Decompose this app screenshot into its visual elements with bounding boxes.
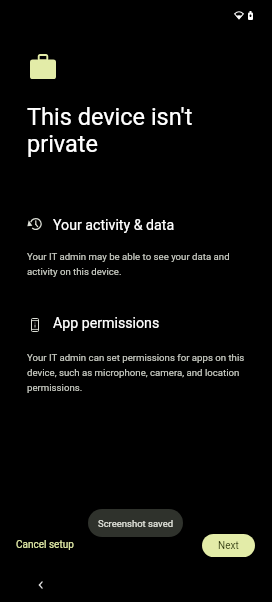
staticText: Next <box>218 540 239 552</box>
staticText: App permissions <box>53 315 160 332</box>
button[interactable]: Screenshot saved <box>88 509 183 537</box>
staticText: Screenshot saved <box>98 518 174 529</box>
button[interactable]: Back <box>29 573 53 597</box>
staticText: Your activity & data <box>53 217 175 234</box>
button[interactable]: Next <box>202 534 255 557</box>
staticText: Cancel setup <box>16 539 74 551</box>
staticText: This device isn't private <box>27 103 222 157</box>
staticText: Your IT admin may be able to see your da… <box>27 251 253 278</box>
button[interactable]: Cancel setup <box>8 534 82 556</box>
staticText: Your IT admin can set permissions for ap… <box>27 352 253 394</box>
